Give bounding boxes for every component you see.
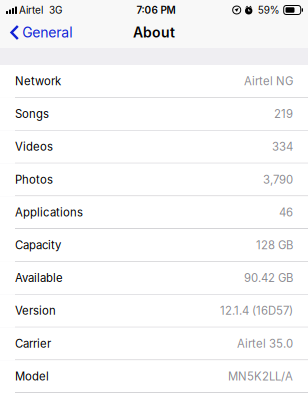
staticText: Capacity <box>15 238 61 252</box>
staticText: Carrier <box>15 337 51 350</box>
staticText: 128 GB <box>256 238 293 252</box>
staticText: MN5K2LL/A <box>228 369 293 383</box>
button[interactable]: Songs <box>0 98 308 131</box>
staticText: 7:06 PM <box>136 4 175 16</box>
staticText: Applications <box>15 205 83 219</box>
button[interactable]: Applications <box>0 196 308 229</box>
staticText: Songs <box>15 107 49 121</box>
staticText: Photos <box>15 173 53 186</box>
staticText: 219 <box>274 107 293 121</box>
button[interactable]: Videos <box>0 131 308 163</box>
button[interactable]: Photos <box>0 163 308 196</box>
staticText: General <box>22 24 72 41</box>
staticText: Airtel NG <box>244 74 293 88</box>
staticText: Version <box>15 304 56 318</box>
staticText: Network <box>15 74 61 88</box>
staticText: 3G <box>49 4 62 16</box>
staticText: Airtel <box>19 4 43 16</box>
staticText: 12.1.4 (16D57) <box>220 304 293 318</box>
button[interactable]: Network <box>0 65 308 98</box>
button[interactable]: Model <box>0 360 308 393</box>
button[interactable]: Capacity <box>0 229 308 262</box>
staticText: 59% <box>258 4 280 16</box>
button[interactable]: General <box>0 20 82 48</box>
button[interactable]: Carrier <box>0 327 308 360</box>
staticText: 46 <box>279 205 293 219</box>
staticText: Airtel 35.0 <box>237 337 293 350</box>
staticText: Available <box>15 271 63 285</box>
button[interactable]: Available <box>0 262 308 295</box>
staticText: Model <box>15 369 49 383</box>
staticText: About <box>133 24 175 41</box>
staticText: 3,790 <box>263 173 293 186</box>
staticText: Videos <box>15 140 53 154</box>
button[interactable]: Version <box>0 295 308 327</box>
staticText: 334 <box>272 140 293 154</box>
staticText: 90.42 GB <box>244 271 293 285</box>
